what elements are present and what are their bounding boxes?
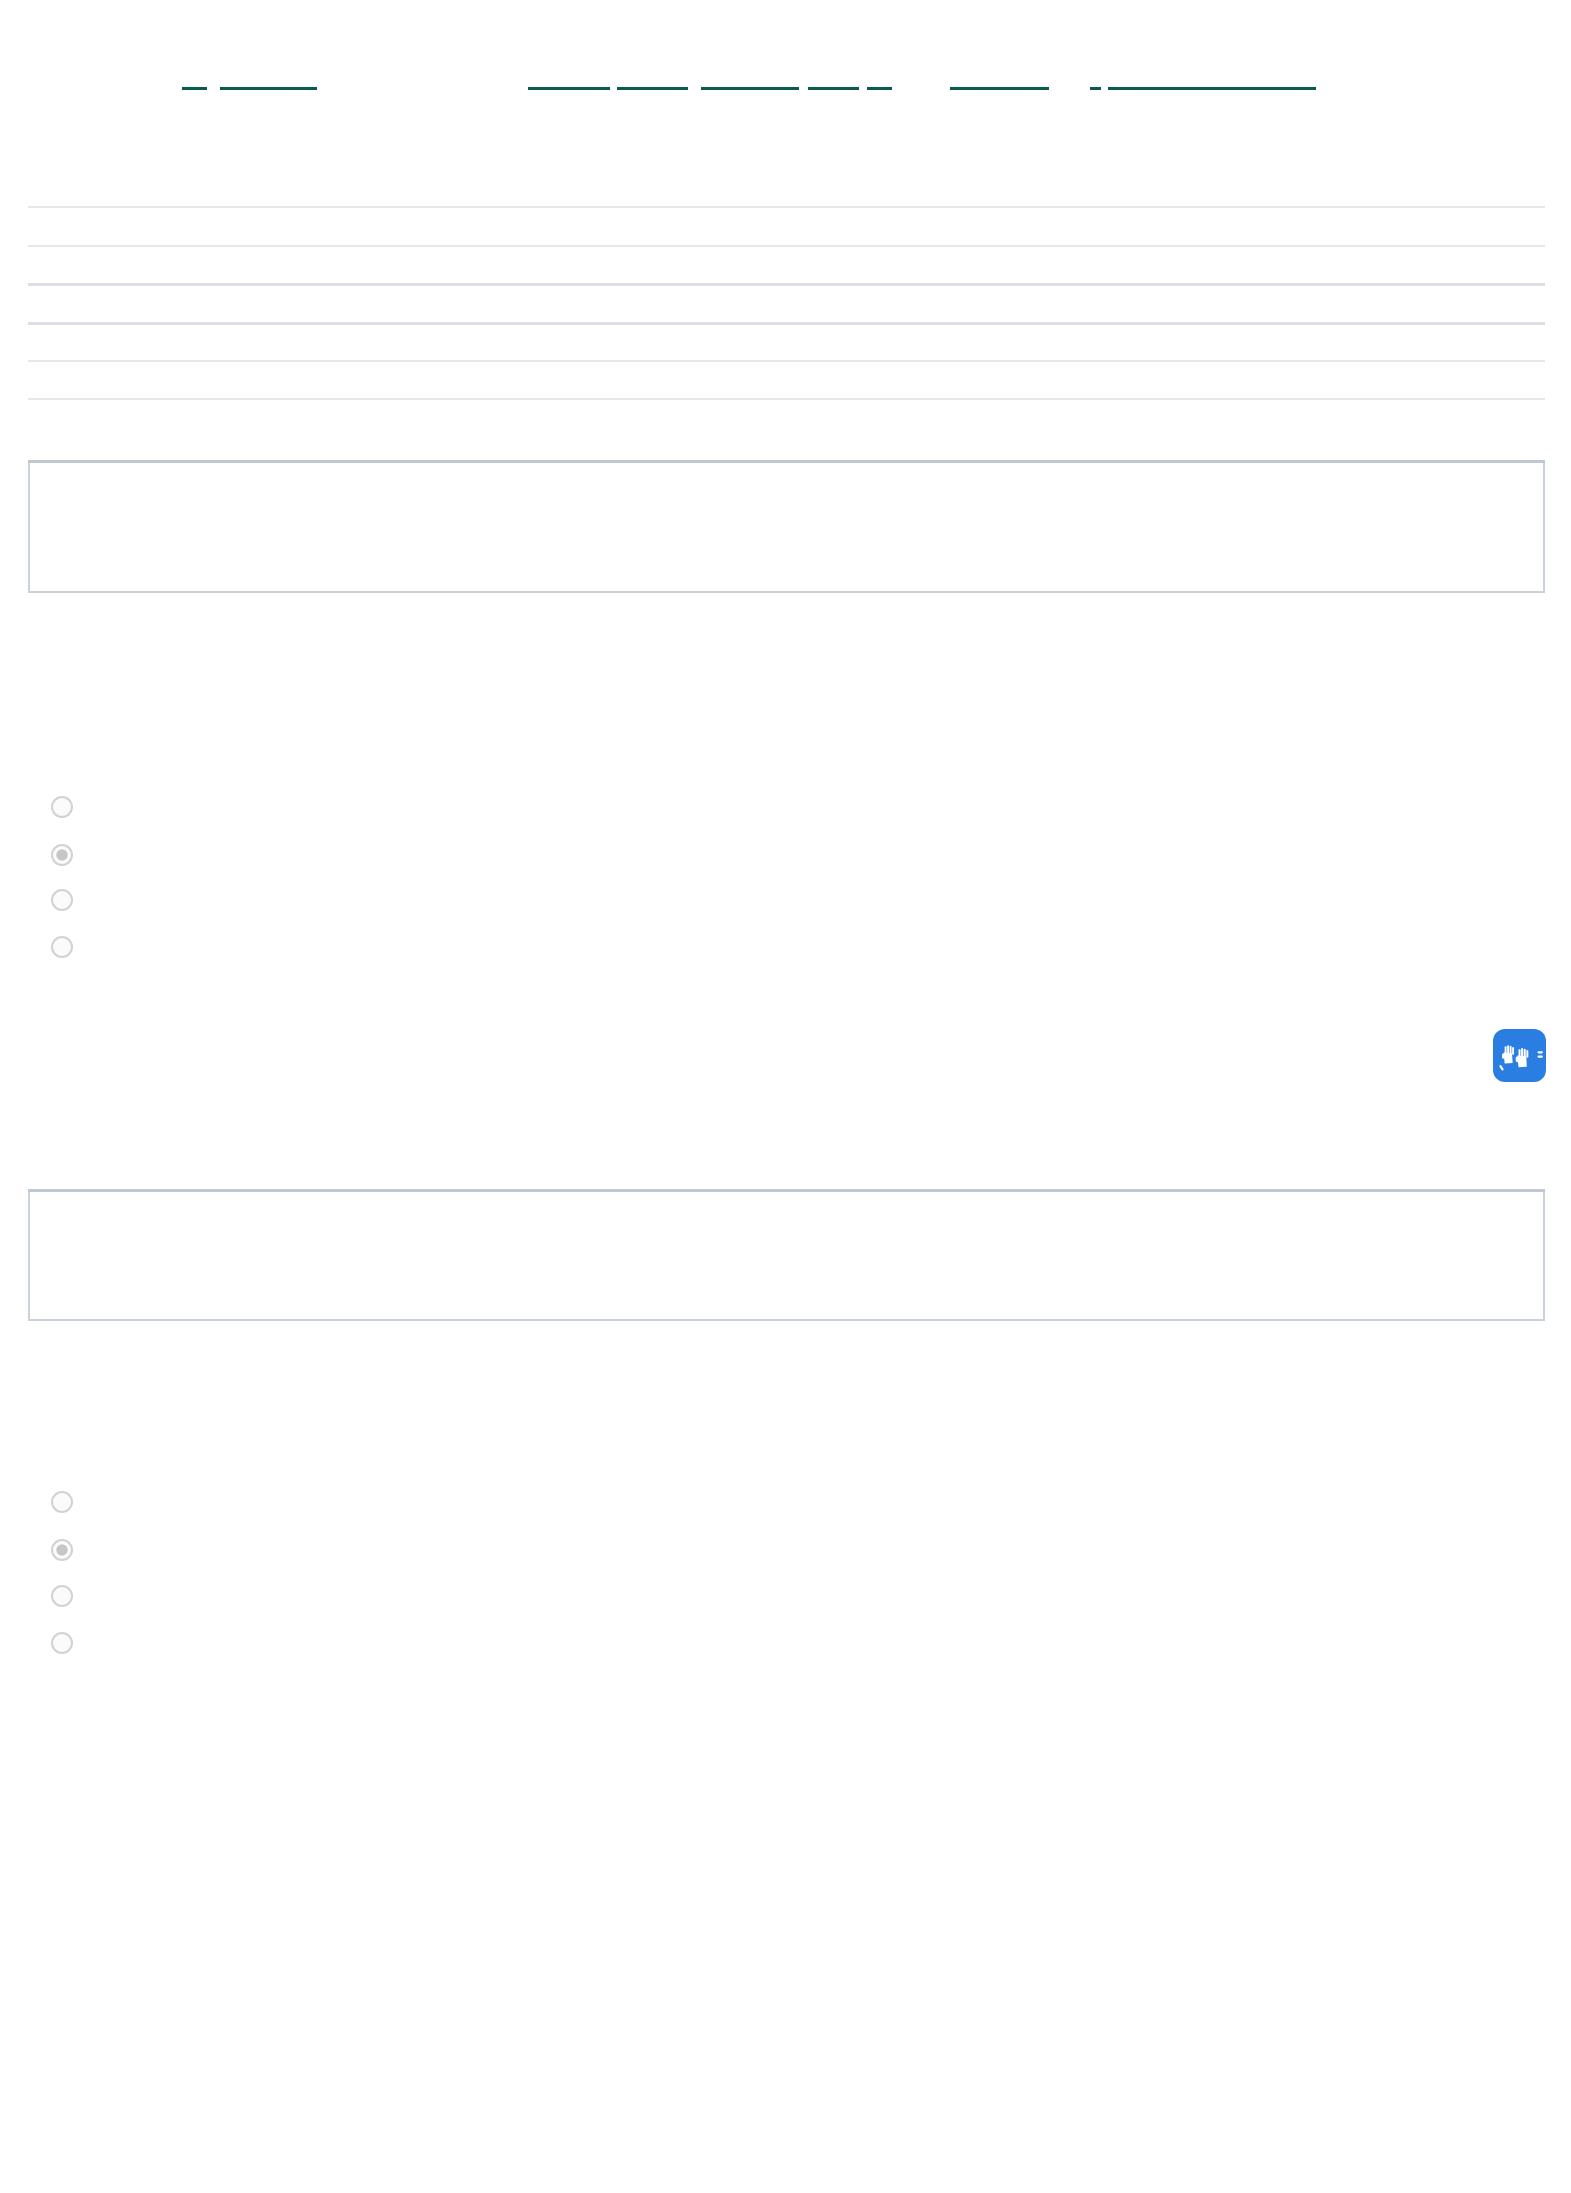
button[interactable]: Option — [51, 1585, 73, 1607]
button[interactable]: Option — [51, 1632, 73, 1654]
button[interactable]: Navigation link — [528, 64, 610, 94]
button[interactable]: Option — [51, 889, 73, 911]
button[interactable]: Text area — [28, 1189, 1545, 1321]
button[interactable]: Text area — [28, 460, 1545, 593]
button[interactable]: Option — [51, 936, 73, 958]
button[interactable]: Sign language accessibility — [1493, 1029, 1546, 1082]
button[interactable]: Navigation link — [1090, 64, 1101, 94]
button[interactable]: Option — [51, 1491, 73, 1513]
button[interactable]: Navigation link — [808, 64, 859, 94]
button[interactable]: Navigation link — [220, 64, 317, 94]
button[interactable]: Navigation link — [701, 64, 799, 94]
button[interactable]: Navigation link — [182, 64, 207, 94]
button[interactable]: Selected option — [51, 1539, 73, 1561]
button[interactable]: Selected option — [51, 844, 73, 866]
button[interactable]: Navigation link — [1108, 64, 1316, 94]
button[interactable]: Navigation link — [950, 64, 1049, 94]
button[interactable]: Option — [51, 796, 73, 818]
button[interactable]: Navigation link — [867, 64, 892, 94]
button[interactable]: Navigation link — [617, 64, 688, 94]
